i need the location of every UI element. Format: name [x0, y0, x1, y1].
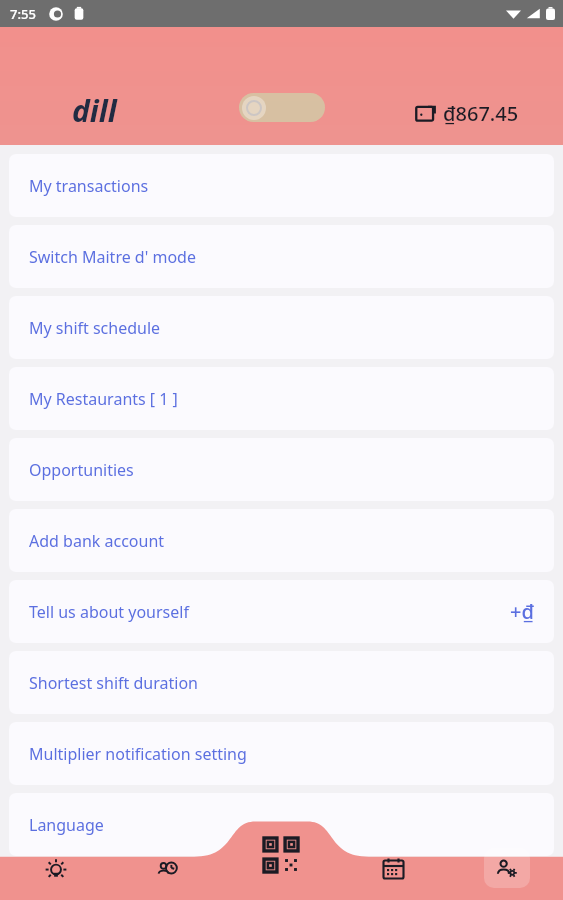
staticText: Add bank account [29, 530, 165, 552]
staticText: My shift schedule [29, 317, 161, 339]
staticText: My Restaurants [ 1 ] [29, 388, 178, 410]
staticText: +₫ [510, 598, 534, 625]
button[interactable]: dill logo [72, 90, 117, 131]
button[interactable]: Switch Maitre d' mode [9, 225, 554, 288]
button[interactable]: Shortest shift duration [9, 651, 554, 714]
staticText: 7:55 [10, 5, 36, 23]
button[interactable]: Language [9, 793, 554, 856]
staticText: ₫867.45 [443, 100, 519, 127]
button[interactable]: History [112, 820, 224, 900]
button[interactable]: Add bank account [9, 509, 554, 572]
button[interactable]: Calendar [337, 820, 450, 900]
button[interactable]: Support [9, 864, 554, 900]
button[interactable]: Account settings [450, 820, 563, 900]
staticText: Tell us about yourself [29, 601, 189, 623]
staticText: Shortest shift duration [29, 672, 198, 694]
button[interactable]: Tell us about yourself [9, 580, 554, 643]
button[interactable]: My shift schedule [9, 296, 554, 359]
staticText: Opportunities [29, 459, 134, 481]
button[interactable]: Availability toggle [239, 93, 325, 122]
staticText: My transactions [29, 175, 149, 197]
button[interactable]: Opportunities [9, 438, 554, 501]
button[interactable]: ₫867.45 [415, 100, 519, 127]
staticText: Language [29, 814, 104, 836]
staticText: Switch Maitre d' mode [29, 246, 196, 268]
button[interactable]: My Restaurants [ 1 ] [9, 367, 554, 430]
staticText: dill [72, 90, 117, 131]
button[interactable]: Ideas [0, 820, 112, 900]
button[interactable]: My transactions [9, 154, 554, 217]
staticText: Multiplier notification setting [29, 743, 247, 765]
button[interactable]: Multiplier notification setting [9, 722, 554, 785]
button[interactable]: Scan QR code [224, 820, 337, 900]
